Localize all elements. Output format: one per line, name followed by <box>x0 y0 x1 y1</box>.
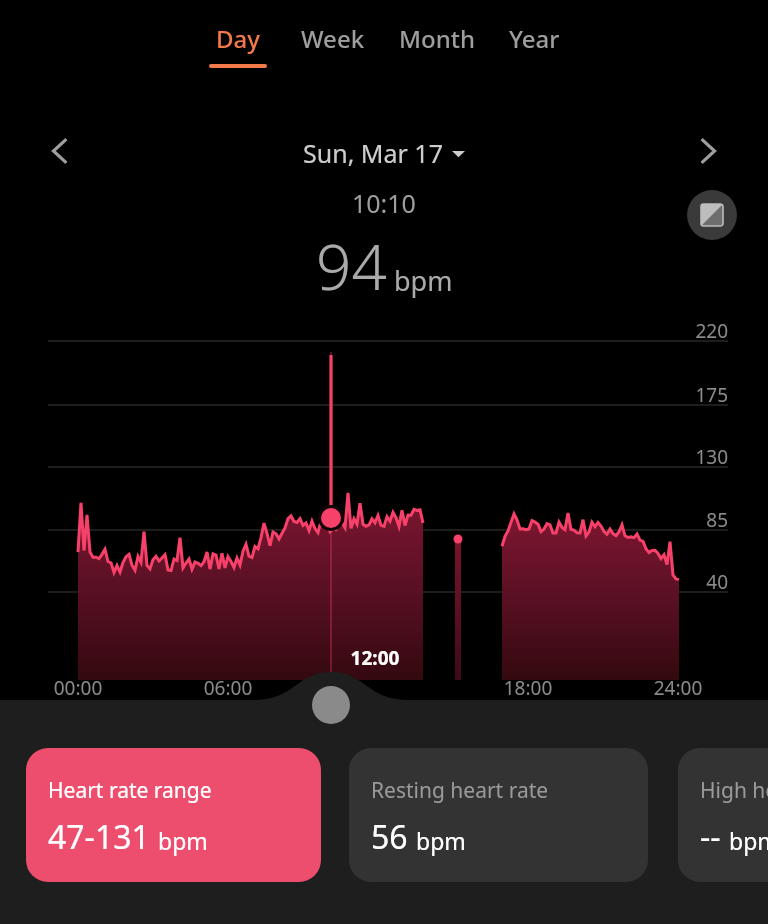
staticText: 47-131 <box>48 815 150 859</box>
staticText: 175 <box>668 382 728 408</box>
staticText: Day <box>216 22 260 55</box>
staticText: 00:00 <box>28 675 128 701</box>
staticText: bpm <box>416 825 466 856</box>
staticText: 18:00 <box>478 675 578 701</box>
staticText: Week <box>301 22 365 55</box>
button[interactable]: Heart rate range <box>26 748 321 882</box>
staticText: 94 <box>316 224 387 308</box>
staticText: 12:00 <box>325 645 425 671</box>
staticText: Heart rate range <box>48 776 212 805</box>
button[interactable]: Week <box>295 0 371 74</box>
staticText: 56 <box>371 815 408 859</box>
staticText: High heart rate <box>700 776 768 805</box>
staticText: Month <box>399 22 475 55</box>
staticText: 24:00 <box>628 675 728 701</box>
button[interactable]: Previous day <box>34 124 88 178</box>
staticText: 06:00 <box>178 675 278 701</box>
button[interactable]: Day <box>203 0 273 74</box>
staticText: 130 <box>668 444 728 470</box>
button[interactable]: Drag handle <box>300 676 362 738</box>
staticText: bpm <box>158 825 208 856</box>
staticText: Year <box>509 22 560 55</box>
button[interactable]: Year <box>503 0 566 74</box>
button[interactable]: High heart rate <box>678 748 768 882</box>
button[interactable]: Month <box>393 0 481 74</box>
staticText: bpm <box>729 825 768 856</box>
button[interactable]: Resting heart rate <box>349 748 648 882</box>
staticText: 10:10 <box>352 186 416 220</box>
staticText: bpm <box>394 262 453 299</box>
staticText: -- <box>700 815 721 859</box>
staticText: 40 <box>668 569 728 595</box>
staticText: 220 <box>668 318 728 344</box>
staticText: 85 <box>668 507 728 533</box>
button[interactable]: Sun, Mar 17 <box>293 132 475 174</box>
staticText: Sun, Mar 17 <box>303 136 443 170</box>
button[interactable]: Compare <box>687 190 737 240</box>
button[interactable]: Next day <box>680 124 734 178</box>
staticText: Resting heart rate <box>371 776 549 805</box>
